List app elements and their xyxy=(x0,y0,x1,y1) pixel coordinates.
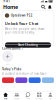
button[interactable]: Search xyxy=(40,4,47,10)
staticText: Chats xyxy=(26,98,30,100)
button[interactable]: Connections xyxy=(2,46,54,51)
staticText: Today's Picks xyxy=(2,67,21,71)
staticText: Connections xyxy=(2,47,20,50)
button[interactable]: Pick 3 xyxy=(29,77,41,83)
staticText: Home xyxy=(4,98,8,100)
staticText: Home xyxy=(3,3,18,11)
button[interactable]: Chats xyxy=(22,91,34,100)
button[interactable]: Add xyxy=(2,51,13,65)
staticText: Uptodown P22 xyxy=(11,14,33,17)
button[interactable]: Pick 2 xyxy=(15,77,27,83)
staticText: A curated selection of new faces xyxy=(2,72,46,75)
staticText: Me xyxy=(49,98,51,100)
button[interactable]: People xyxy=(11,91,22,100)
button[interactable]: Me xyxy=(45,91,56,100)
staticText: People xyxy=(14,98,19,100)
button[interactable]: Notifications xyxy=(47,4,53,10)
button[interactable]: Home xyxy=(0,91,11,100)
staticText: 9:41 xyxy=(3,0,10,3)
staticText: Meet the people who share your interests… xyxy=(5,27,45,34)
button[interactable]: Pick 1 xyxy=(2,77,14,83)
button[interactable]: Pick 4 xyxy=(42,77,54,83)
staticText: Browse xyxy=(36,98,42,100)
button[interactable]: Browse xyxy=(34,91,45,100)
staticText: Unlock Your Chat xyxy=(5,21,39,26)
button[interactable]: Start Chatting xyxy=(5,42,51,48)
staticText: Start Chatting xyxy=(18,43,38,47)
staticText: Add xyxy=(6,63,9,65)
